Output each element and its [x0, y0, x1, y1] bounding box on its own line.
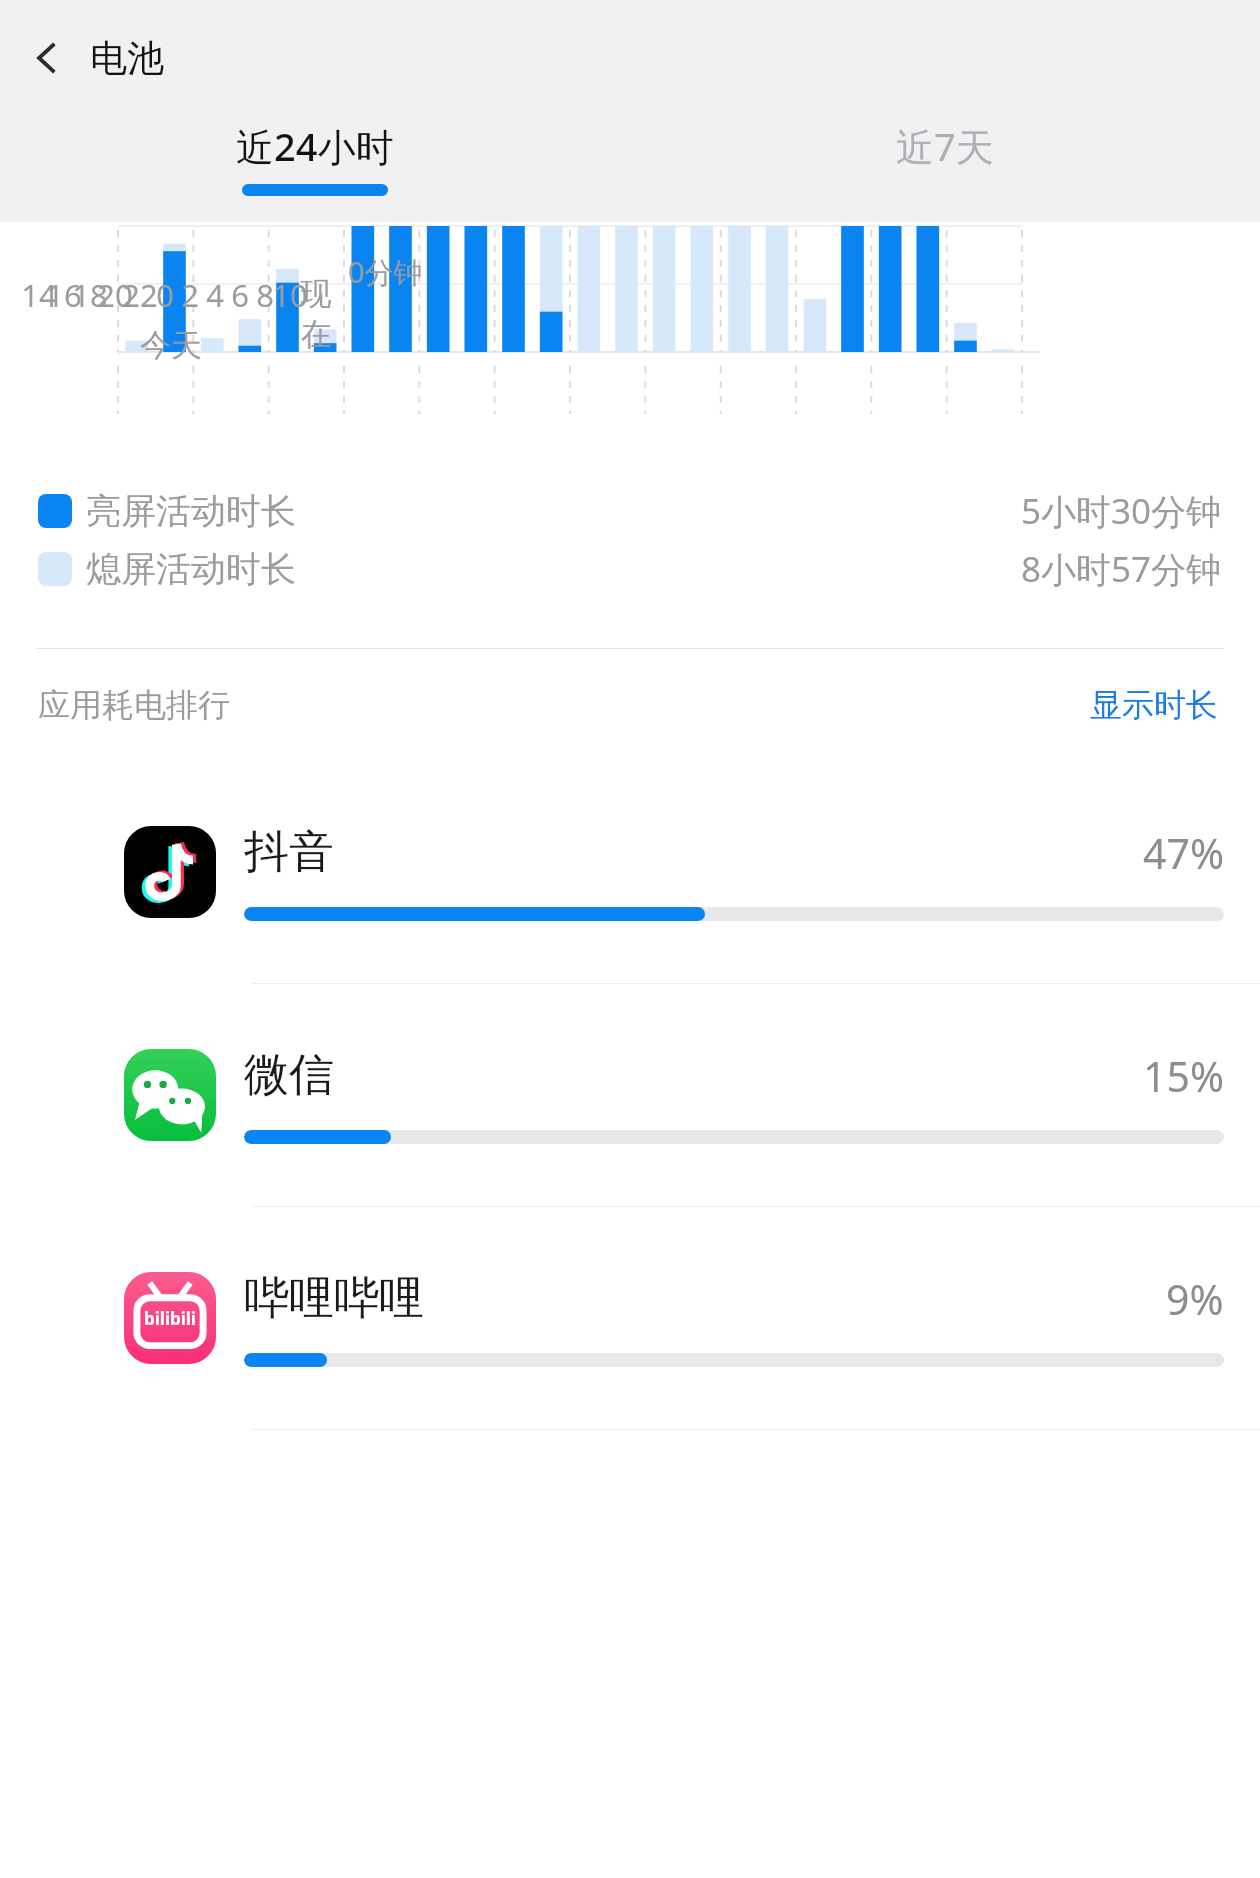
staticText: 抖音	[244, 824, 334, 881]
button[interactable]: 显示时长	[1086, 681, 1222, 729]
staticText: 微信	[244, 1047, 334, 1104]
button[interactable]: 抖音	[0, 761, 1260, 983]
staticText: 8	[235, 274, 295, 316]
staticText: 现在	[286, 274, 346, 354]
staticText: 今天	[140, 326, 202, 365]
staticText: 哔哩哔哩	[244, 1270, 424, 1327]
staticText: 9%	[1166, 1271, 1224, 1327]
staticText: 2	[160, 274, 220, 316]
staticText: 16	[34, 274, 94, 316]
staticText: 0分钟	[348, 252, 423, 292]
staticText: 电池	[90, 35, 164, 82]
staticText: 20	[85, 274, 145, 316]
staticText: 0	[135, 274, 195, 316]
staticText: 近7天	[896, 120, 994, 172]
button[interactable]: bilibili	[0, 1206, 1260, 1429]
staticText: 近24小时	[236, 120, 394, 172]
staticText: 5小时30分钟	[1021, 487, 1222, 535]
button[interactable]: 近7天	[630, 116, 1260, 212]
staticText: 熄屏活动时长	[86, 547, 296, 591]
staticText: 显示时长	[1090, 685, 1218, 725]
staticText: 4	[185, 274, 245, 316]
staticText: 14	[9, 274, 69, 316]
button[interactable]: 近24小时	[0, 116, 630, 212]
staticText: 22	[110, 274, 170, 316]
staticText: bilibili	[144, 1307, 196, 1330]
staticText: 10	[260, 274, 320, 316]
staticText: 8小时57分钟	[1021, 545, 1222, 593]
button[interactable]: 微信	[0, 983, 1260, 1206]
staticText: 18	[60, 274, 120, 316]
staticText: 应用耗电排行	[38, 685, 230, 725]
staticText: 6	[210, 274, 270, 316]
staticText: 15%	[1143, 1048, 1224, 1104]
staticText: 47%	[1143, 825, 1224, 881]
button[interactable]: Back	[16, 26, 80, 90]
staticText: 亮屏活动时长	[86, 489, 296, 533]
